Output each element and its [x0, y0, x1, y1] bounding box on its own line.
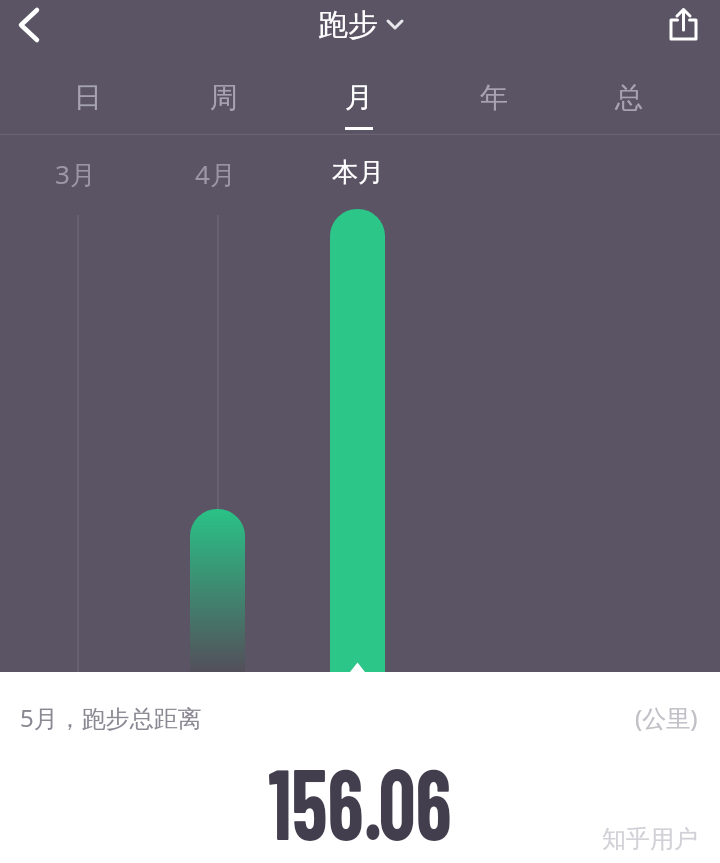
staticText: 周 — [210, 80, 238, 115]
staticText: 3月 — [55, 156, 96, 192]
button[interactable] — [664, 4, 704, 48]
button[interactable]: 跑步 — [318, 6, 403, 44]
staticText: 4月 — [195, 156, 236, 192]
staticText: 月 — [345, 80, 373, 115]
staticText: 156.06 — [268, 740, 452, 860]
button[interactable]: 日 — [20, 57, 156, 137]
staticText: 年 — [480, 80, 508, 115]
button[interactable]: 月 — [291, 57, 426, 137]
staticText: 日 — [74, 80, 102, 115]
button[interactable] — [10, 5, 50, 45]
button[interactable]: 年 — [426, 57, 561, 137]
staticText: 知乎用户 — [602, 824, 698, 854]
button[interactable]: 周 — [156, 57, 291, 137]
staticText: 总 — [615, 80, 643, 115]
button[interactable]: 总 — [561, 57, 696, 137]
staticText: 本月 — [332, 156, 384, 189]
staticText: 跑步 — [318, 6, 378, 44]
staticText: (公里) — [635, 701, 698, 734]
staticText: 5月，跑步总距离 — [20, 701, 202, 734]
